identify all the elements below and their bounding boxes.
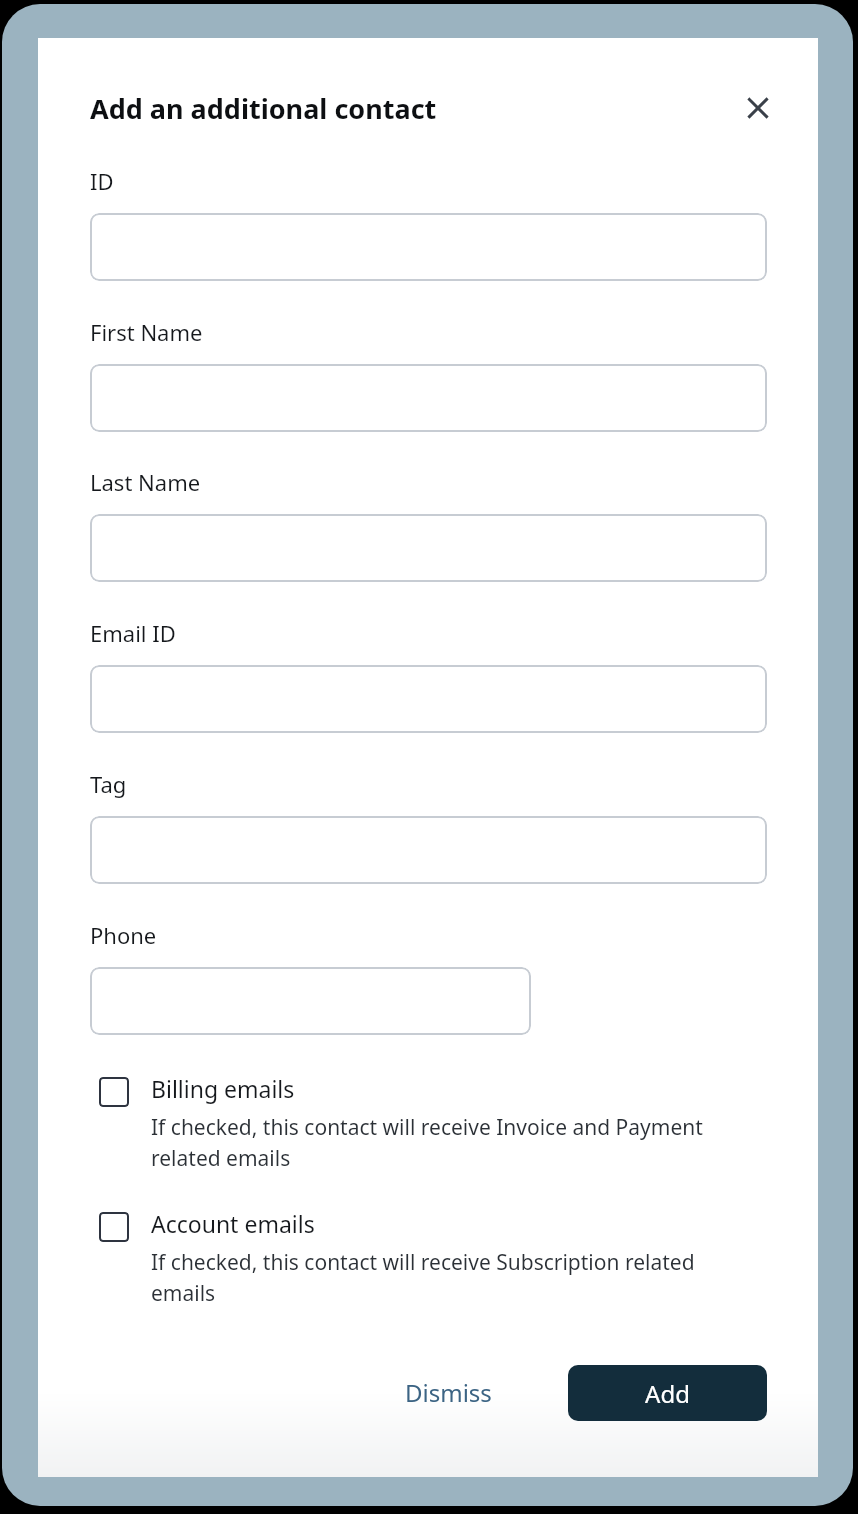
button[interactable]: Close — [736, 86, 780, 130]
staticText: Tag — [90, 769, 127, 799]
button[interactable] — [90, 816, 767, 884]
button[interactable] — [90, 665, 767, 733]
staticText: Add an additional contact — [90, 90, 437, 127]
staticText: ID — [90, 166, 114, 196]
button[interactable] — [90, 967, 531, 1035]
staticText: Billing emails — [151, 1073, 295, 1104]
staticText: Phone — [90, 920, 157, 950]
staticText: First Name — [90, 317, 203, 347]
button[interactable] — [90, 213, 767, 281]
staticText: If checked, this contact will receive In… — [151, 1113, 736, 1172]
staticText: Email ID — [90, 618, 176, 648]
button[interactable] — [90, 364, 767, 432]
staticText: Account emails — [151, 1208, 315, 1239]
staticText: Last Name — [90, 467, 201, 497]
button[interactable]: Billing emails — [90, 1073, 780, 1172]
button[interactable]: Dismiss — [387, 1364, 510, 1421]
button[interactable]: Account emails — [90, 1208, 780, 1307]
staticText: If checked, this contact will receive Su… — [151, 1248, 731, 1307]
staticText: Dismiss — [405, 1376, 492, 1409]
button[interactable] — [90, 514, 767, 582]
staticText: Add — [645, 1377, 690, 1410]
button[interactable]: Add — [568, 1365, 767, 1421]
